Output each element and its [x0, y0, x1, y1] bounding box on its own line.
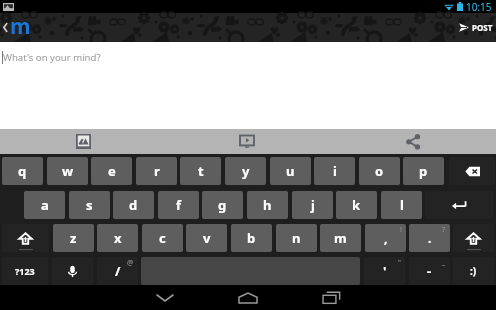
staticText: j	[311, 196, 315, 214]
staticText: f	[176, 196, 182, 214]
staticText: e	[108, 162, 116, 180]
button[interactable]: e	[91, 157, 132, 185]
button[interactable]: b	[231, 224, 272, 252]
staticText: :)	[470, 264, 477, 278]
button[interactable]: ?123	[2, 257, 48, 285]
staticText: b	[247, 229, 256, 247]
button[interactable]: j	[292, 191, 333, 219]
staticText: -	[427, 262, 432, 280]
staticText: What's on your mind?	[3, 51, 101, 64]
staticText: "	[398, 258, 401, 268]
button[interactable]: -	[409, 257, 450, 285]
button[interactable]: Enter	[425, 191, 493, 219]
button[interactable]: /	[97, 257, 138, 285]
button[interactable]: '	[364, 257, 405, 285]
staticText: ,	[384, 230, 388, 246]
button[interactable]: s	[69, 191, 110, 219]
button[interactable]: Back	[0, 13, 10, 42]
button[interactable]: POST	[453, 13, 496, 42]
button[interactable]: Shift	[2, 224, 49, 252]
staticText: z	[70, 229, 77, 247]
staticText: u	[286, 162, 295, 180]
button[interactable]: x	[97, 224, 138, 252]
button[interactable]: Share	[393, 129, 433, 154]
button[interactable]: Emoji	[453, 257, 494, 285]
button[interactable]: Insert video	[227, 129, 267, 154]
staticText: d	[129, 196, 138, 214]
button[interactable]: l	[381, 191, 422, 219]
button[interactable]: Backspace	[449, 157, 495, 185]
staticText: POST	[472, 22, 493, 33]
staticText: q	[18, 162, 27, 180]
button[interactable]: g	[202, 191, 243, 219]
button[interactable]: Shift	[453, 224, 494, 252]
button[interactable]: n	[276, 224, 317, 252]
button[interactable]: Recent apps	[310, 285, 352, 310]
button[interactable]: Back	[144, 285, 186, 310]
button[interactable]: r	[136, 157, 177, 185]
staticText: s	[86, 196, 93, 214]
staticText: /	[115, 262, 121, 280]
button[interactable]: k	[336, 191, 377, 219]
button[interactable]: ,	[365, 224, 406, 252]
staticText: y	[242, 162, 250, 180]
button[interactable]: u	[270, 157, 311, 185]
button[interactable]: p	[403, 157, 444, 185]
staticText: n	[292, 229, 301, 247]
staticText: p	[419, 162, 428, 180]
staticText: m	[334, 229, 347, 247]
staticText: m	[10, 12, 31, 41]
button[interactable]: d	[113, 191, 154, 219]
staticText: v	[203, 229, 211, 247]
button[interactable]: o	[359, 157, 400, 185]
staticText: w	[62, 162, 74, 180]
staticText: ?123	[15, 265, 35, 277]
button[interactable]: i	[314, 157, 355, 185]
staticText: k	[352, 196, 361, 214]
button[interactable]: Home	[227, 285, 269, 310]
staticText: t	[198, 162, 204, 180]
staticText: g	[218, 196, 227, 214]
staticText: l	[400, 196, 404, 214]
staticText: a	[41, 196, 49, 214]
staticText: ?	[442, 225, 446, 235]
staticText: o	[375, 162, 384, 180]
staticText: x	[114, 229, 122, 247]
button[interactable]: c	[142, 224, 183, 252]
button[interactable]: v	[186, 224, 227, 252]
staticText: 10:15	[466, 0, 492, 13]
button[interactable]: f	[158, 191, 199, 219]
staticText: _	[442, 258, 446, 268]
button[interactable]: a	[24, 191, 65, 219]
button[interactable]: q	[2, 157, 43, 185]
button[interactable]: Insert photo	[63, 129, 103, 154]
button[interactable]: t	[180, 157, 221, 185]
staticText: '	[383, 262, 387, 280]
button[interactable]: w	[47, 157, 88, 185]
button[interactable]: .	[409, 224, 450, 252]
button[interactable]: z	[53, 224, 94, 252]
button[interactable]: Voice input	[52, 257, 93, 285]
button[interactable]: m	[320, 224, 361, 252]
staticText: .	[428, 230, 432, 246]
staticText: i	[333, 162, 337, 180]
staticText: c	[159, 229, 166, 247]
staticText: @	[127, 258, 134, 268]
button[interactable]: y	[225, 157, 266, 185]
staticText: h	[263, 196, 272, 214]
button[interactable]: h	[247, 191, 288, 219]
staticText: r	[154, 162, 160, 180]
staticText: !	[400, 225, 402, 235]
